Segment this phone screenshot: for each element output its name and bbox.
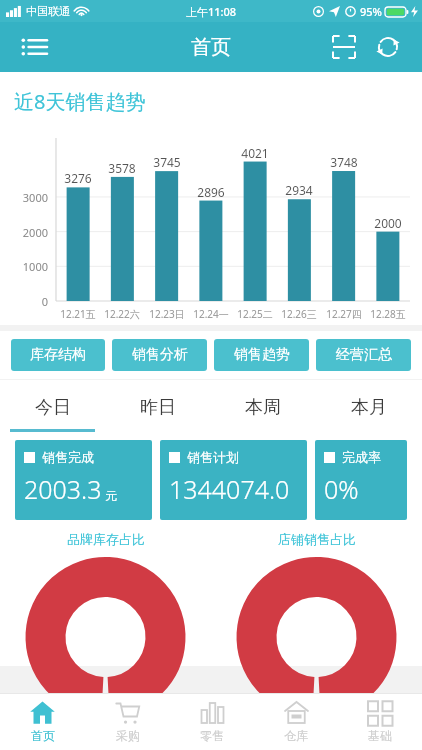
- staticText: 3745: [145, 154, 189, 170]
- staticText: 0%: [324, 472, 359, 506]
- staticText: 2934: [277, 182, 321, 198]
- button[interactable]: 采购: [85, 693, 170, 750]
- button[interactable]: 销售计划: [160, 440, 307, 520]
- staticText: 12.28五: [363, 307, 413, 321]
- staticText: 12.26三: [274, 307, 324, 321]
- staticText: 2000: [4, 225, 48, 240]
- staticText: 销售分析: [132, 346, 188, 364]
- button[interactable]: 零售: [170, 693, 254, 750]
- button[interactable]: 今日: [0, 380, 105, 434]
- staticText: 上午11:08: [186, 4, 237, 19]
- staticText: 3276: [56, 170, 100, 186]
- staticText: 12.25二: [230, 307, 280, 321]
- staticText: 12.27四: [319, 307, 369, 321]
- staticText: 3578: [100, 160, 144, 176]
- button[interactable]: Scan: [324, 27, 364, 67]
- staticText: 3748: [322, 154, 366, 170]
- button[interactable]: Refresh: [368, 27, 408, 67]
- staticText: 2000: [366, 215, 410, 231]
- button[interactable]: 昨日: [105, 380, 210, 434]
- button[interactable]: 完成率: [315, 440, 407, 520]
- staticText: 仓库: [284, 728, 308, 743]
- staticText: 2896: [189, 184, 233, 200]
- button[interactable]: 本月: [316, 380, 422, 434]
- staticText: 1000: [4, 259, 48, 274]
- staticText: 中国联通: [26, 4, 70, 18]
- staticText: 采购: [116, 728, 140, 743]
- staticText: 12.22六: [97, 307, 147, 321]
- staticText: 12.21五: [53, 307, 103, 321]
- staticText: 首页: [191, 35, 231, 60]
- button[interactable]: 销售完成: [15, 440, 152, 520]
- staticText: 4021: [233, 145, 277, 161]
- button[interactable]: 经营汇总: [316, 339, 411, 371]
- staticText: 销售完成: [42, 449, 94, 465]
- staticText: 元: [105, 488, 117, 503]
- staticText: 品牌库存占比: [67, 531, 145, 547]
- staticText: 12.24一: [186, 307, 236, 321]
- staticText: 今日: [35, 396, 71, 419]
- button[interactable]: 首页: [0, 693, 85, 750]
- staticText: 基础: [368, 728, 392, 743]
- staticText: 店铺销售占比: [278, 531, 356, 547]
- button[interactable]: Menu: [12, 25, 56, 69]
- staticText: 完成率: [342, 449, 381, 465]
- staticText: 库存结构: [30, 346, 86, 364]
- staticText: 3000: [4, 190, 48, 205]
- staticText: 本周: [245, 396, 281, 419]
- button[interactable]: 仓库: [254, 693, 338, 750]
- staticText: 经营汇总: [336, 346, 392, 364]
- staticText: 昨日: [140, 396, 176, 419]
- staticText: 1344074.0: [169, 472, 290, 506]
- staticText: 零售: [200, 728, 224, 743]
- button[interactable]: 销售趋势: [214, 339, 309, 371]
- button[interactable]: 库存结构: [11, 339, 105, 371]
- staticText: 销售计划: [187, 449, 239, 465]
- button[interactable]: 本周: [210, 380, 316, 434]
- staticText: 12.23日: [142, 307, 192, 321]
- staticText: 95%: [360, 4, 382, 19]
- button[interactable]: 销售分析: [112, 339, 207, 371]
- staticText: 2003.3: [24, 472, 102, 506]
- staticText: 首页: [31, 728, 55, 743]
- button[interactable]: 基础: [338, 693, 422, 750]
- staticText: 销售趋势: [234, 346, 290, 364]
- staticText: 0: [4, 294, 48, 309]
- staticText: 近8天销售趋势: [14, 88, 146, 115]
- staticText: 本月: [351, 396, 387, 419]
